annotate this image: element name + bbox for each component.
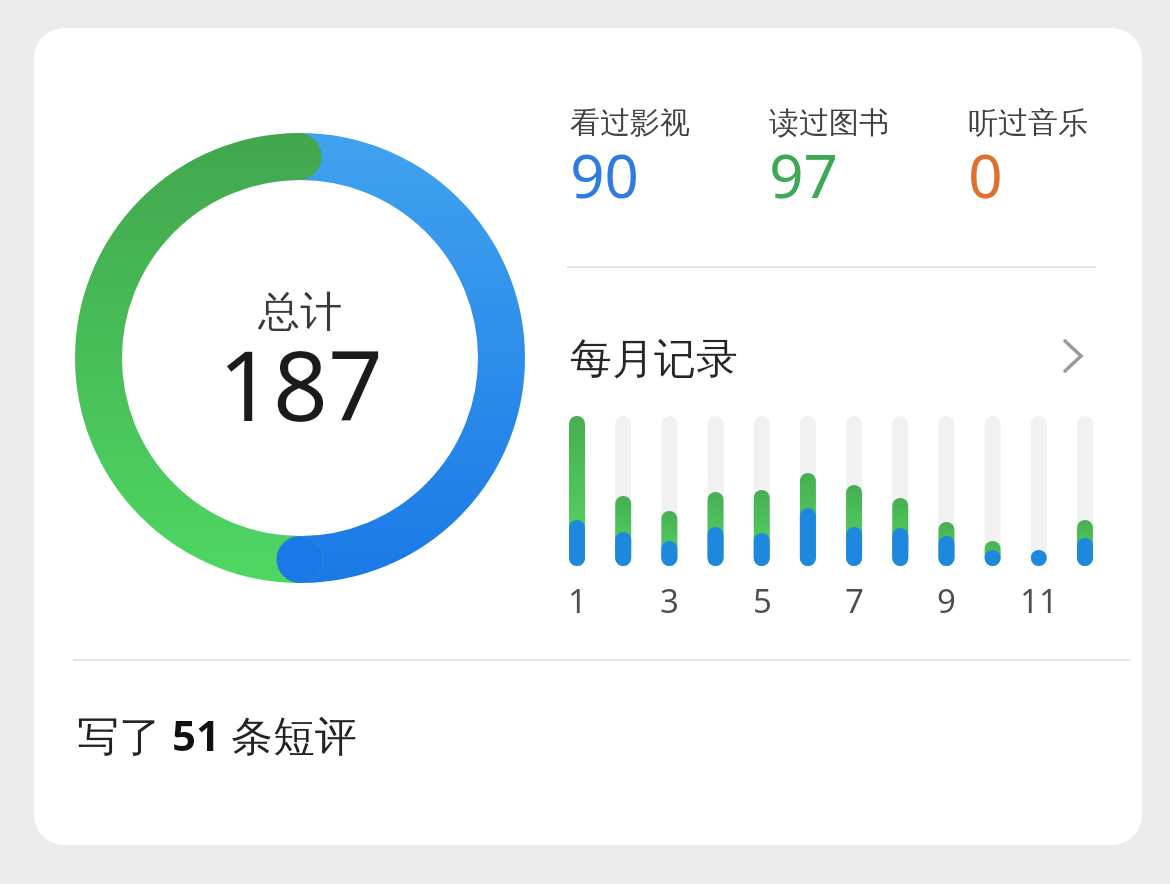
staticText: 9 bbox=[937, 578, 956, 623]
staticText: 97 bbox=[769, 134, 838, 216]
staticText: 每月记录 bbox=[570, 333, 738, 386]
staticText: 3 bbox=[660, 578, 679, 623]
staticText: 1 bbox=[568, 578, 587, 623]
staticText: 7 bbox=[845, 578, 864, 623]
button[interactable]: 读过图书 bbox=[769, 100, 954, 245]
staticText: 看过影视 bbox=[570, 104, 690, 142]
button[interactable]: 听过音乐 bbox=[968, 100, 1142, 245]
staticText: 听过音乐 bbox=[968, 104, 1088, 142]
staticText: 187 bbox=[218, 318, 383, 449]
button[interactable]: 看过影视 bbox=[570, 100, 755, 245]
staticText: 0 bbox=[968, 134, 1003, 216]
staticText: 读过图书 bbox=[769, 104, 889, 142]
staticText: 11 bbox=[1020, 578, 1058, 623]
button[interactable]: 写了 51 条短评 bbox=[77, 706, 357, 763]
staticText: 总计 bbox=[258, 286, 342, 339]
staticText: 90 bbox=[570, 134, 639, 216]
button[interactable]: 每月记录 bbox=[570, 331, 1096, 387]
staticText: 写了 51 条短评 bbox=[77, 706, 357, 763]
staticText: 5 bbox=[753, 578, 772, 623]
